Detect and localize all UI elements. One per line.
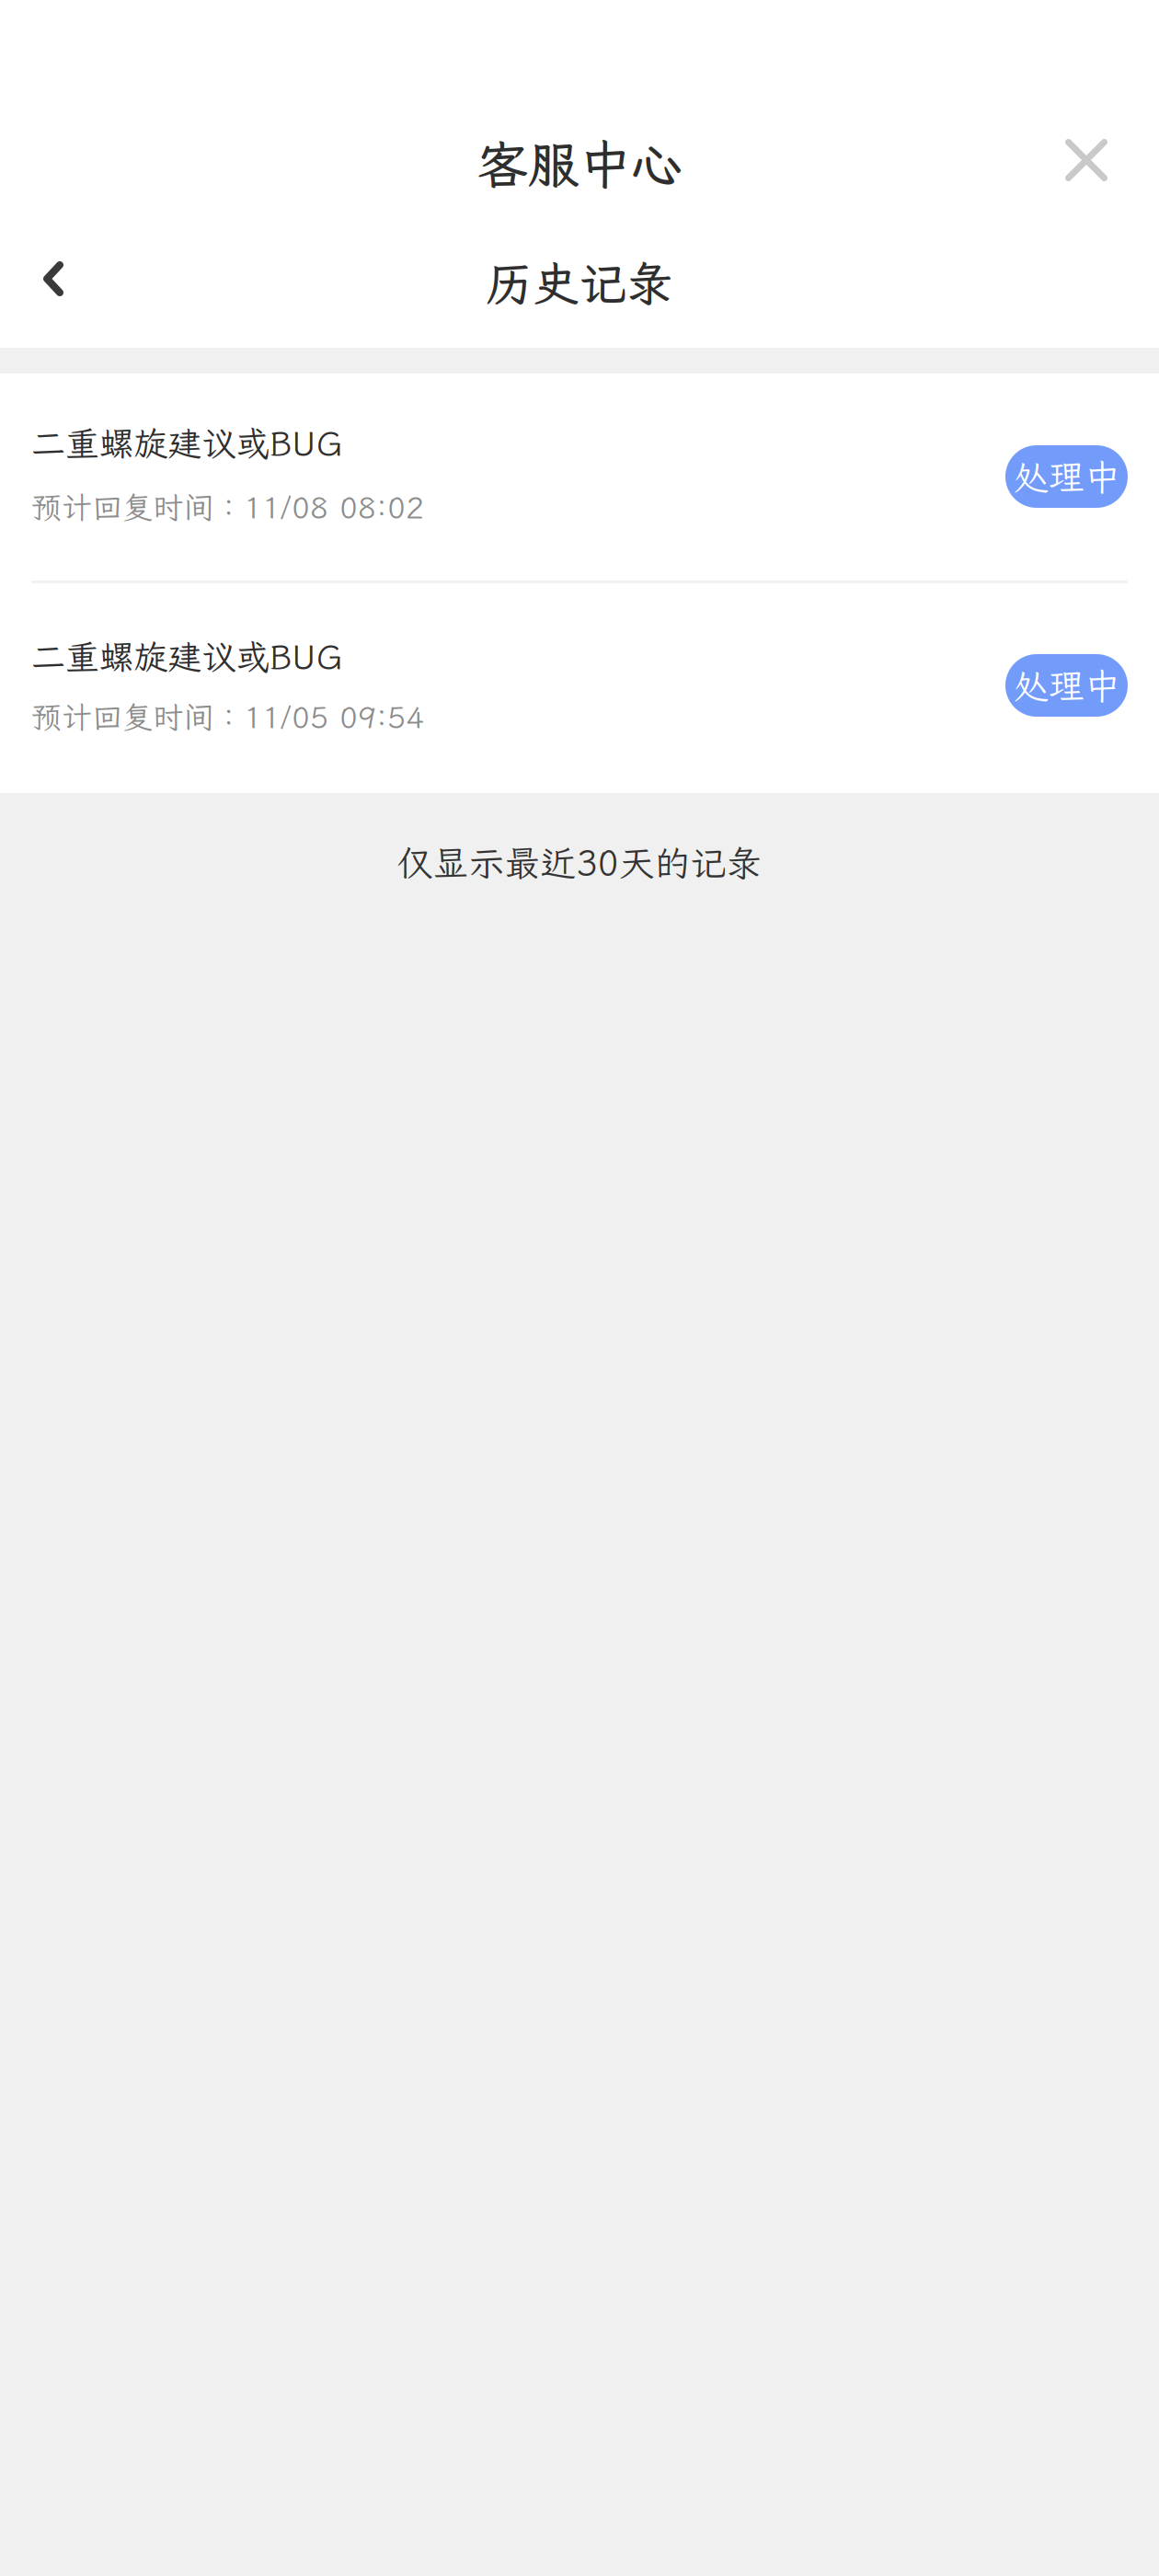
button[interactable]: Close	[1044, 118, 1129, 202]
button[interactable]: 二重螺旋建议或BUG	[0, 583, 1159, 793]
button[interactable]: Back	[9, 235, 98, 323]
staticText: 预计回复时间：11/05 09:54	[31, 697, 424, 737]
staticText: 客服中心	[476, 130, 683, 198]
staticText: 二重螺旋建议或BUG	[31, 634, 342, 679]
staticText: 历史记录	[486, 252, 673, 313]
staticText: 二重螺旋建议或BUG	[31, 420, 342, 466]
button[interactable]: 二重螺旋建议或BUG	[0, 374, 1159, 581]
staticText: 处理中	[1013, 662, 1120, 709]
staticText: 仅显示最近30天的记录	[397, 839, 762, 886]
staticText: 预计回复时间：11/08 08:02	[31, 487, 424, 527]
staticText: 处理中	[1013, 453, 1120, 500]
